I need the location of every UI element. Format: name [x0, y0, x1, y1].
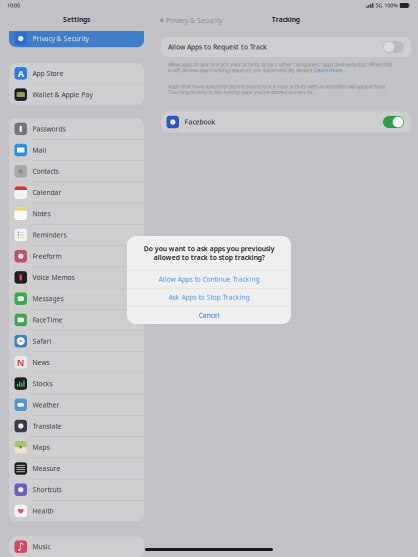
staticText: A: [18, 67, 24, 80]
button[interactable]: Contacts: [9, 161, 144, 182]
button[interactable]: Learn more…: [314, 67, 346, 74]
button[interactable]: ♪: [9, 536, 144, 557]
staticText: Learn more…: [314, 67, 346, 74]
button[interactable]: Translate: [9, 416, 144, 436]
staticText: Reminders: [32, 230, 66, 239]
staticText: Maps: [32, 443, 49, 452]
staticText: Wallet & Apple Pay: [32, 90, 92, 99]
staticText: Apps that have asked for permission to t…: [168, 83, 386, 96]
button[interactable]: Privacy & Security: [153, 15, 228, 31]
staticText: 10:00: [7, 2, 20, 9]
staticText: Allow Apps to Continue Tracking: [158, 275, 259, 284]
button[interactable]: Safari: [9, 331, 144, 351]
button[interactable]: Stocks: [9, 373, 144, 394]
staticText: FaceTime: [32, 315, 62, 324]
button[interactable]: Facebook: [161, 111, 411, 132]
staticText: Mail: [32, 146, 46, 154]
staticText: Allow apps to ask to track your activity…: [168, 61, 393, 68]
staticText: App Store: [32, 69, 63, 78]
staticText: Privacy & Security: [166, 16, 222, 25]
staticText: Facebook: [184, 118, 215, 126]
staticText: Messages: [32, 294, 63, 303]
button[interactable]: Measure: [9, 458, 144, 479]
staticText: 5G: [375, 2, 382, 9]
staticText: Tracking: [272, 15, 300, 24]
staticText: Health: [32, 506, 53, 515]
staticText: N: [17, 356, 25, 369]
staticText: Contacts: [32, 167, 58, 176]
button[interactable]: Allow Apps to Continue Tracking: [127, 270, 291, 288]
button[interactable]: Health: [9, 501, 144, 521]
staticText: Allow Apps to Request to Track: [168, 43, 267, 51]
button[interactable]: A: [9, 63, 144, 84]
staticText: Ask Apps to Stop Tracking: [168, 293, 249, 302]
staticText: Translate: [32, 422, 61, 430]
button[interactable]: Ask Apps to Stop Tracking: [127, 288, 291, 306]
staticText: Do you want to ask apps you previously a…: [143, 244, 274, 262]
button[interactable]: Voice Memos: [9, 267, 144, 288]
button[interactable]: Wallet & Apple Pay: [9, 84, 144, 105]
staticText: News: [32, 358, 49, 367]
staticText: Cancel: [198, 311, 219, 320]
button[interactable]: N: [9, 352, 144, 373]
staticText: Calendar: [32, 188, 61, 197]
button[interactable]: Notes: [9, 203, 144, 224]
staticText: ♪: [17, 540, 25, 553]
staticText: Privacy & Security: [32, 34, 88, 43]
button[interactable]: Mail: [9, 140, 144, 160]
staticText: Safari: [32, 337, 51, 346]
button[interactable]: Passwords: [9, 118, 144, 139]
button[interactable]: Cancel: [127, 306, 291, 324]
button[interactable]: FaceTime: [9, 309, 144, 330]
staticText: Weather: [32, 400, 59, 409]
button[interactable]: Reminders: [9, 225, 144, 245]
staticText: is off, all new app tracking requests ar…: [168, 67, 314, 74]
button[interactable]: Messages: [9, 288, 144, 309]
button[interactable]: Shortcuts: [9, 479, 144, 500]
button[interactable]: Maps: [9, 437, 144, 458]
staticText: 100%: [384, 2, 398, 9]
staticText: Passwords: [32, 124, 65, 133]
staticText: Shortcuts: [32, 485, 61, 494]
staticText: Notes: [32, 209, 50, 218]
button[interactable]: Allow Apps to Request to Track: [161, 37, 411, 57]
button[interactable]: Freeform: [9, 246, 144, 266]
button[interactable]: Calendar: [9, 182, 144, 203]
button[interactable]: Weather: [9, 394, 144, 415]
staticText: Music: [32, 542, 50, 551]
staticText: Stocks: [32, 379, 52, 388]
staticText: Measure: [32, 464, 60, 473]
staticText: Voice Memos: [32, 273, 74, 282]
staticText: Settings: [63, 15, 90, 24]
staticText: Freeform: [32, 252, 61, 261]
